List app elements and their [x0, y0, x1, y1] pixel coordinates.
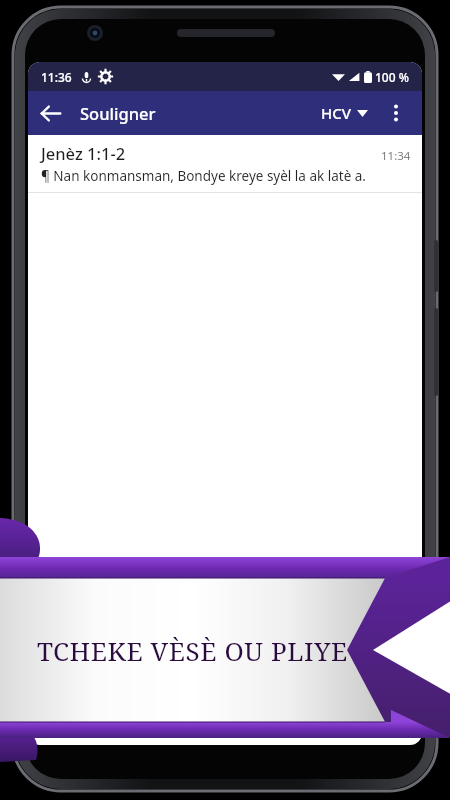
- staticText: 11:34: [381, 148, 411, 164]
- staticText: Souligner: [80, 102, 156, 124]
- staticText: ¶ Nan konmansman, Bondye kreye syèl la a…: [41, 167, 366, 185]
- button[interactable]: More options: [376, 93, 416, 133]
- button[interactable]: HCV: [315, 97, 374, 129]
- button[interactable]: Jenèz 1:1-2: [28, 135, 422, 192]
- staticText: Jenèz 1:1-2: [41, 142, 126, 164]
- staticText: 11:36: [41, 69, 72, 85]
- staticText: 100 %: [375, 69, 409, 85]
- button[interactable]: Tcheke vèsè ou pliye: [0, 0, 450, 800]
- staticText: TCHEKE VÈSÈ OU PLIYE: [37, 633, 348, 668]
- button[interactable]: Back: [28, 91, 72, 135]
- staticText: HCV: [321, 103, 351, 123]
